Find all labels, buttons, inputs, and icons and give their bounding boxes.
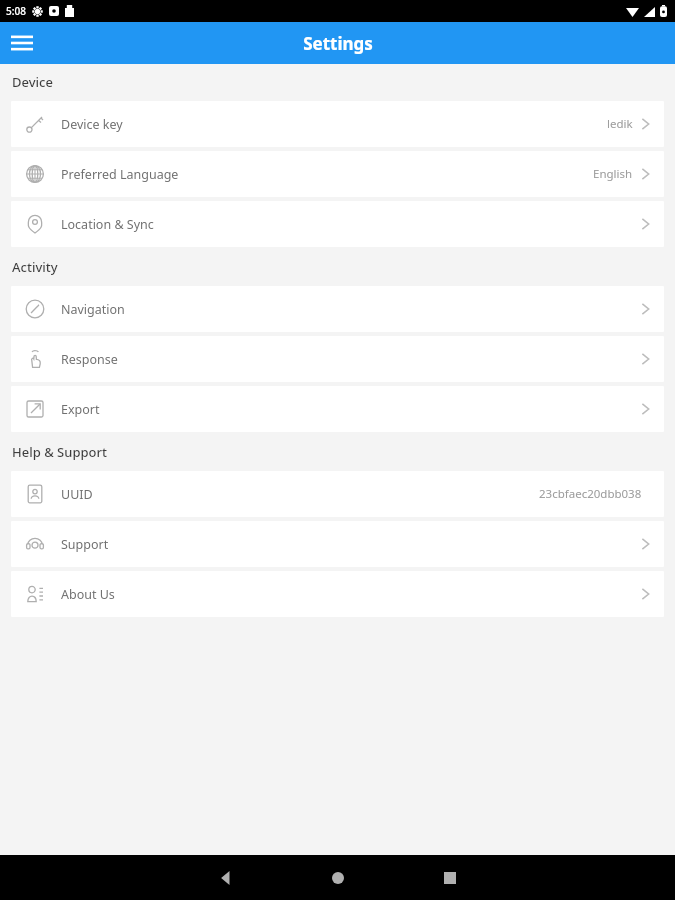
staticText: ledik — [607, 116, 633, 132]
staticText: Preferred Language — [61, 166, 179, 183]
staticText: Navigation — [61, 301, 125, 318]
staticText: Support — [61, 536, 109, 553]
button[interactable]: Support — [11, 521, 664, 567]
button[interactable]: UUID — [11, 471, 664, 517]
staticText: Export — [61, 401, 100, 418]
button[interactable]: Recent apps — [420, 855, 480, 900]
staticText: UUID — [61, 486, 93, 503]
staticText: English — [593, 166, 633, 182]
button[interactable]: Location & Sync — [11, 201, 664, 247]
button[interactable]: Home — [308, 855, 368, 900]
staticText: 23cbfaec20dbb038 — [539, 486, 642, 502]
button[interactable]: Navigation — [11, 286, 664, 332]
staticText: About Us — [61, 586, 115, 603]
button[interactable]: About Us — [11, 571, 664, 617]
staticText: Location & Sync — [61, 216, 154, 233]
button[interactable]: Preferred Language — [11, 151, 664, 197]
staticText: Help & Support — [12, 443, 107, 461]
staticText: Response — [61, 351, 118, 368]
staticText: Device — [12, 73, 53, 91]
button[interactable]: Export — [11, 386, 664, 432]
button[interactable]: Open navigation menu — [6, 27, 38, 59]
button[interactable]: Response — [11, 336, 664, 382]
staticText: 5:08 — [6, 4, 26, 18]
button[interactable]: Back — [196, 855, 256, 900]
staticText: Settings — [303, 32, 373, 55]
button[interactable]: Device key — [11, 101, 664, 147]
staticText: Device key — [61, 116, 123, 133]
staticText: Activity — [12, 258, 58, 276]
